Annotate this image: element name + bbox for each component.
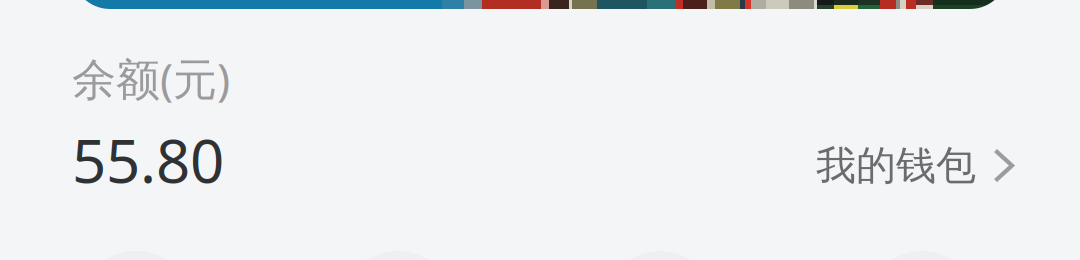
staticText: 我的钱包: [816, 141, 976, 190]
staticText: 55.80: [72, 120, 224, 200]
button[interactable]: 卡券: [866, 251, 978, 260]
staticText: 余额(元): [72, 49, 230, 107]
button[interactable]: 扫一扫: [80, 251, 192, 260]
button[interactable]: 收付款: [604, 251, 716, 260]
button[interactable]: Promotion banner: [72, 0, 1008, 9]
button[interactable]: 我的钱包: [810, 133, 1021, 198]
button[interactable]: 付款码: [342, 251, 454, 260]
